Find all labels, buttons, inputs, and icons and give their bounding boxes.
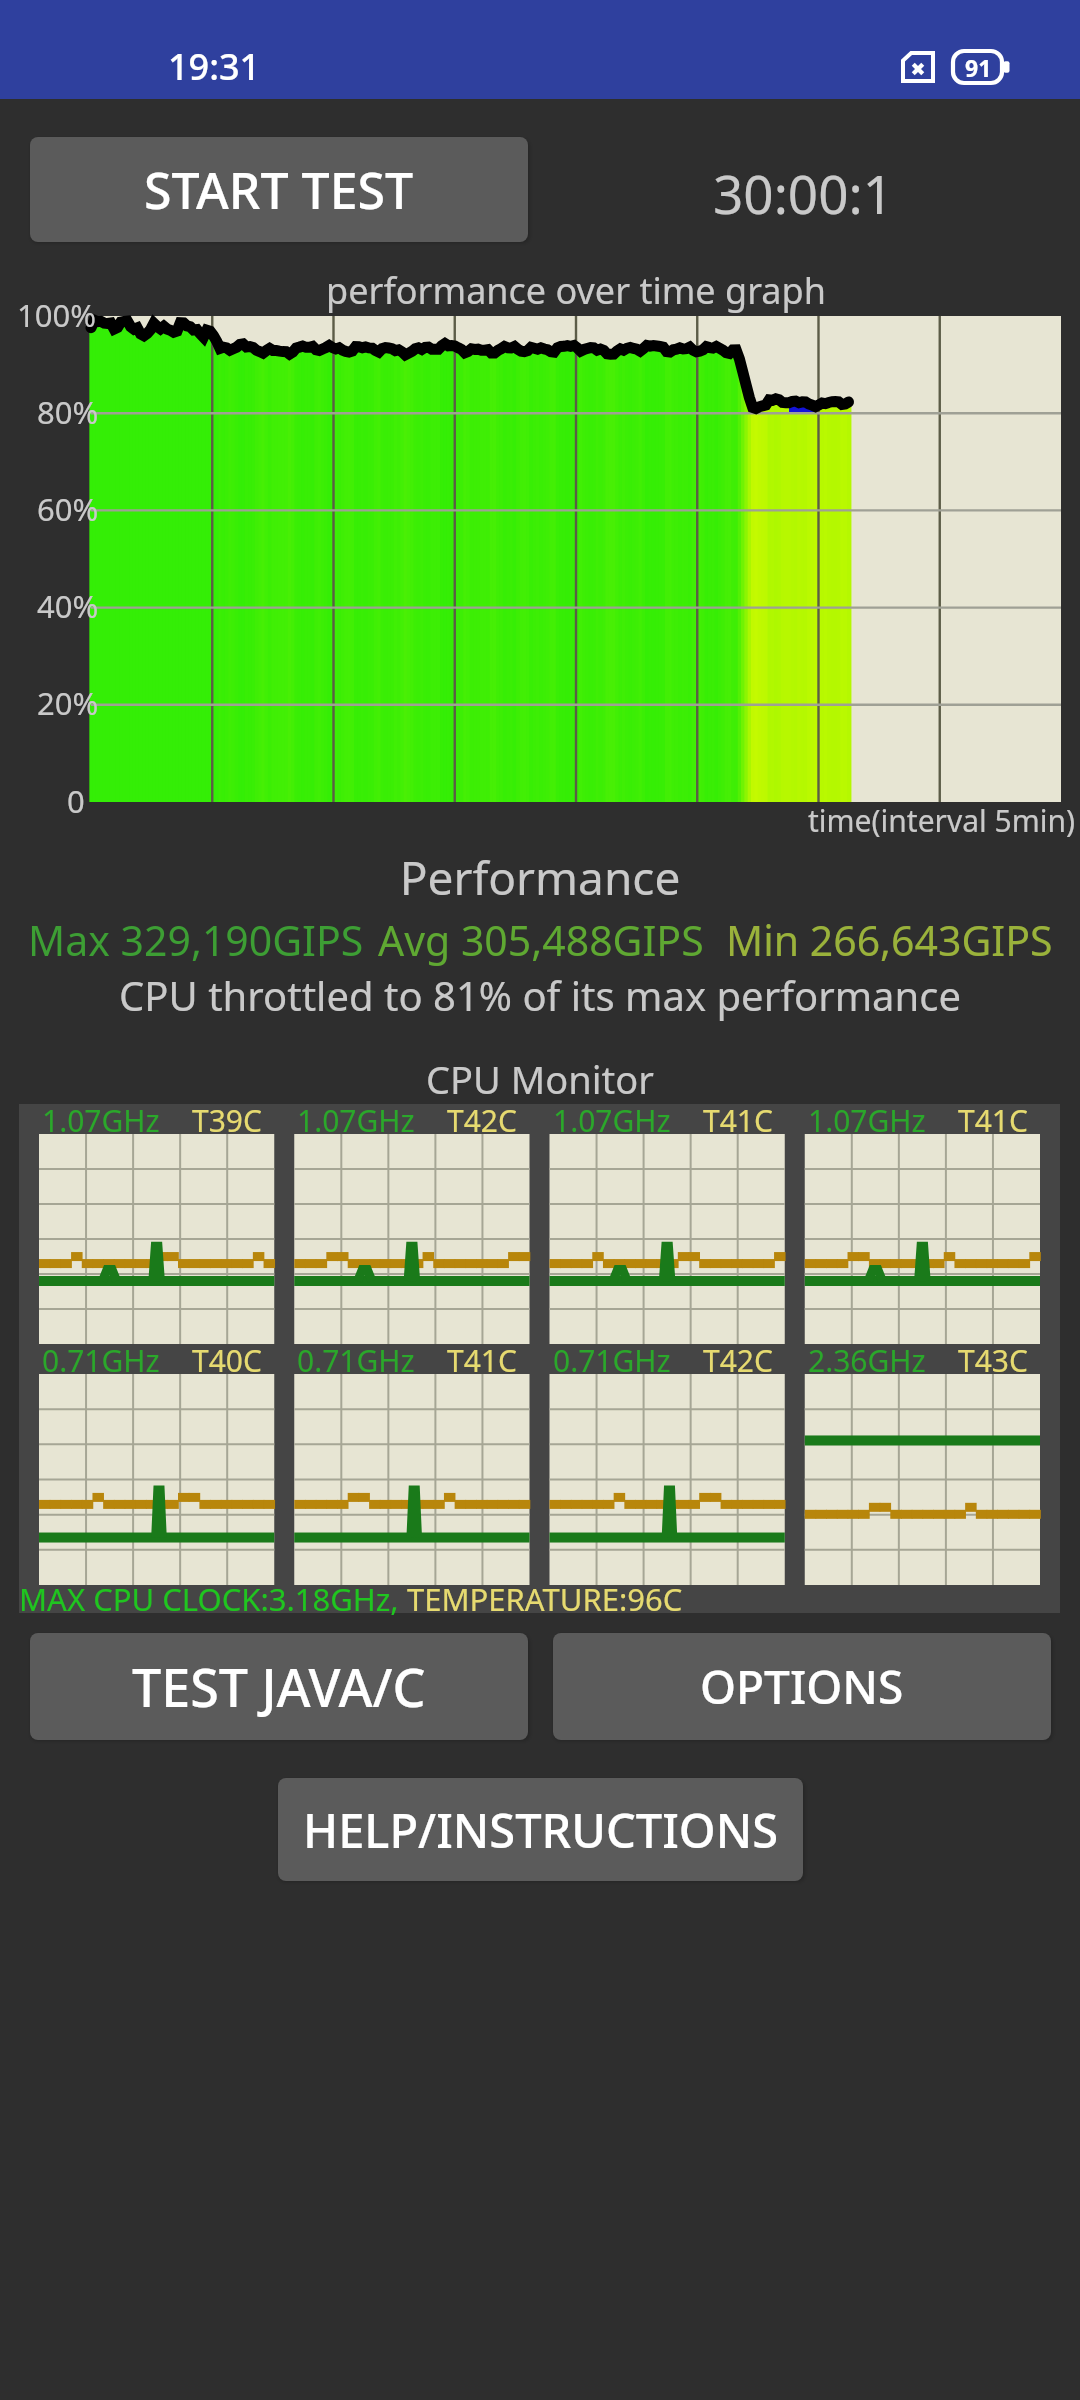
staticText: 19:31 bbox=[168, 42, 261, 91]
staticText: T40C bbox=[192, 1340, 262, 1381]
staticText: 20% bbox=[37, 682, 99, 724]
staticText: TEMPERATURE:96C bbox=[407, 1578, 683, 1620]
staticText: 60% bbox=[37, 488, 99, 530]
staticText: T39C bbox=[192, 1100, 262, 1141]
staticText: 40% bbox=[37, 585, 99, 627]
button[interactable]: START TEST bbox=[30, 137, 528, 242]
staticText: T41C bbox=[703, 1100, 773, 1141]
staticText: T42C bbox=[703, 1340, 773, 1381]
staticText: 0.71GHz bbox=[42, 1340, 160, 1381]
staticText: CPU Monitor bbox=[0, 1053, 1080, 1105]
staticText: TEST JAVA/C bbox=[132, 1651, 426, 1722]
staticText: T41C bbox=[447, 1340, 517, 1381]
staticText: START TEST bbox=[144, 156, 414, 224]
staticText: CPU throttled to 81% of its max performa… bbox=[0, 968, 1080, 1022]
staticText: 80% bbox=[37, 391, 99, 433]
staticText: Avg 305,488GIPS bbox=[378, 912, 704, 968]
staticText: 1.07GHz bbox=[553, 1100, 671, 1141]
staticText: T43C bbox=[958, 1340, 1028, 1381]
staticText: 0.71GHz bbox=[297, 1340, 415, 1381]
staticText: performance over time graph bbox=[91, 266, 1061, 315]
staticText: MAX CPU CLOCK:3.18GHz, bbox=[19, 1578, 407, 1620]
staticText: time(interval 5min) bbox=[808, 800, 1076, 841]
staticText: Min 266,643GIPS bbox=[726, 912, 1053, 968]
staticText: T42C bbox=[447, 1100, 517, 1141]
staticText: Max 329,190GIPS bbox=[28, 912, 364, 968]
staticText: 30:00:1 bbox=[713, 157, 893, 229]
staticText: 2.36GHz bbox=[808, 1340, 926, 1381]
staticText: 1.07GHz bbox=[42, 1100, 160, 1141]
staticText: 1.07GHz bbox=[808, 1100, 926, 1141]
button[interactable]: OPTIONS bbox=[553, 1633, 1051, 1740]
staticText: Performance bbox=[0, 846, 1080, 909]
staticText: 0 bbox=[67, 780, 85, 822]
staticText: T41C bbox=[958, 1100, 1028, 1141]
staticText: 0.71GHz bbox=[553, 1340, 671, 1381]
staticText: 91 bbox=[965, 52, 992, 83]
staticText: 100% bbox=[17, 294, 96, 336]
button[interactable]: TEST JAVA/C bbox=[30, 1633, 528, 1740]
staticText: HELP/INSTRUCTIONS bbox=[303, 1798, 779, 1862]
staticText: OPTIONS bbox=[700, 1655, 904, 1718]
button[interactable]: HELP/INSTRUCTIONS bbox=[278, 1778, 803, 1881]
other: No SIM card bbox=[901, 51, 935, 83]
staticText: 1.07GHz bbox=[297, 1100, 415, 1141]
